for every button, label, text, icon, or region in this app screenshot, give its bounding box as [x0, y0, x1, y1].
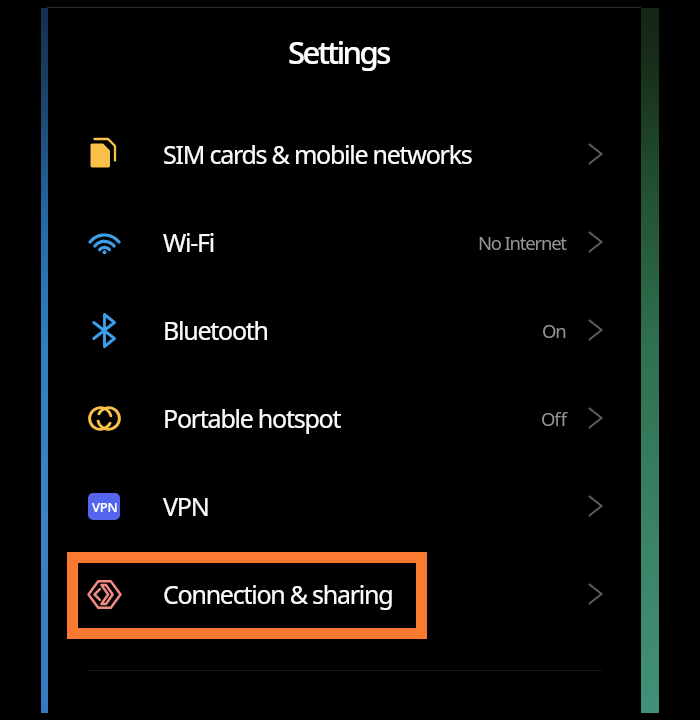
staticText: Bluetooth: [163, 313, 268, 347]
staticText: VPN: [163, 489, 209, 523]
staticText: Wi-Fi: [163, 225, 214, 259]
staticText: No Internet: [478, 230, 566, 255]
button[interactable]: SIM cards & mobile networks: [0, 110, 700, 198]
staticText: Portable hotspot: [163, 401, 341, 435]
staticText: Connection & sharing: [163, 577, 393, 611]
other: Open Bluetooth: [587, 320, 607, 340]
staticText: VPN: [92, 498, 118, 516]
other: Open VPN: [587, 496, 607, 516]
other: Open Wi-Fi: [587, 232, 607, 252]
button[interactable]: VPN: [0, 462, 700, 550]
button[interactable]: Wi-Fi: [0, 198, 700, 286]
staticText: Settings: [288, 31, 389, 73]
other: Open Connection & sharing: [587, 584, 607, 604]
other: Open SIM cards & mobile networks: [587, 144, 607, 164]
staticText: SIM cards & mobile networks: [163, 137, 472, 171]
staticText: Off: [541, 406, 566, 431]
other: Open Portable hotspot: [587, 408, 607, 428]
button[interactable]: Portable hotspot: [0, 374, 700, 462]
button[interactable]: Connection & sharing: [0, 550, 700, 638]
staticText: On: [542, 318, 566, 343]
button[interactable]: Bluetooth: [0, 286, 700, 374]
